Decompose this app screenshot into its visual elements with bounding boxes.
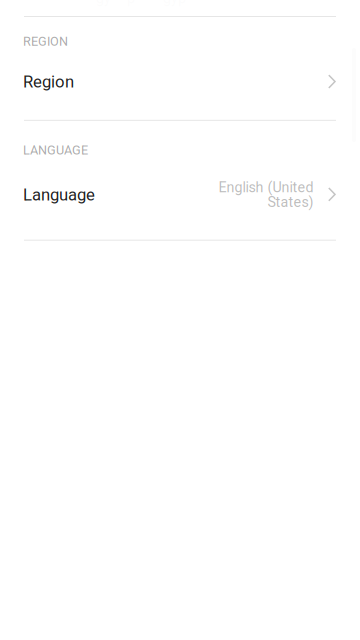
staticText: English (United States) bbox=[218, 179, 313, 210]
staticText: REGION bbox=[23, 34, 68, 49]
staticText: Language bbox=[23, 185, 95, 204]
button[interactable]: Region bbox=[0, 65, 360, 99]
staticText: Region bbox=[23, 72, 74, 92]
staticText: LANGUAGE bbox=[23, 143, 88, 158]
button[interactable]: Language bbox=[0, 172, 360, 218]
